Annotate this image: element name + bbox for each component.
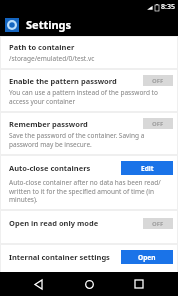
- staticText: /storage/emulated/0/test.vc: [9, 54, 95, 63]
- button[interactable]: Back: [28, 273, 50, 295]
- button[interactable]: OFF: [143, 75, 173, 86]
- staticText: Open in read only mode: [9, 218, 99, 228]
- staticText: Auto-close containers: [9, 163, 91, 173]
- staticText: Edit: [141, 164, 154, 173]
- button[interactable]: App icon: [5, 18, 19, 32]
- button[interactable]: Home: [78, 273, 100, 295]
- button[interactable]: Open: [121, 250, 173, 264]
- button[interactable]: Open in read only mode: [1, 211, 177, 243]
- staticText: Path to container: [9, 42, 75, 52]
- staticText: You can use a pattern instead of the pas…: [9, 88, 173, 106]
- staticText: Remember password: [9, 119, 88, 129]
- staticText: OFF: [152, 77, 164, 85]
- button[interactable]: Edit: [121, 161, 173, 175]
- button[interactable]: OFF: [143, 218, 173, 229]
- staticText: Save the password of the container. Savi…: [9, 131, 173, 149]
- staticText: Internal container settings: [9, 252, 110, 262]
- button[interactable]: Auto-close containers: [1, 156, 177, 209]
- button[interactable]: Internal container settings: [1, 245, 177, 272]
- staticText: Settings: [26, 17, 72, 32]
- button[interactable]: Path to container: [1, 37, 177, 68]
- button[interactable]: OFF: [143, 118, 173, 129]
- staticText: Enable the pattern password: [9, 76, 117, 86]
- staticText: OFF: [152, 120, 164, 128]
- button[interactable]: Recent apps: [128, 273, 150, 295]
- button[interactable]: Enable the pattern password: [1, 70, 177, 111]
- button[interactable]: Remember password: [1, 113, 177, 154]
- staticText: Open: [138, 253, 156, 262]
- staticText: OFF: [152, 220, 164, 228]
- staticText: 8:35: [161, 2, 175, 12]
- staticText: Auto-close container after no data has b…: [9, 178, 173, 204]
